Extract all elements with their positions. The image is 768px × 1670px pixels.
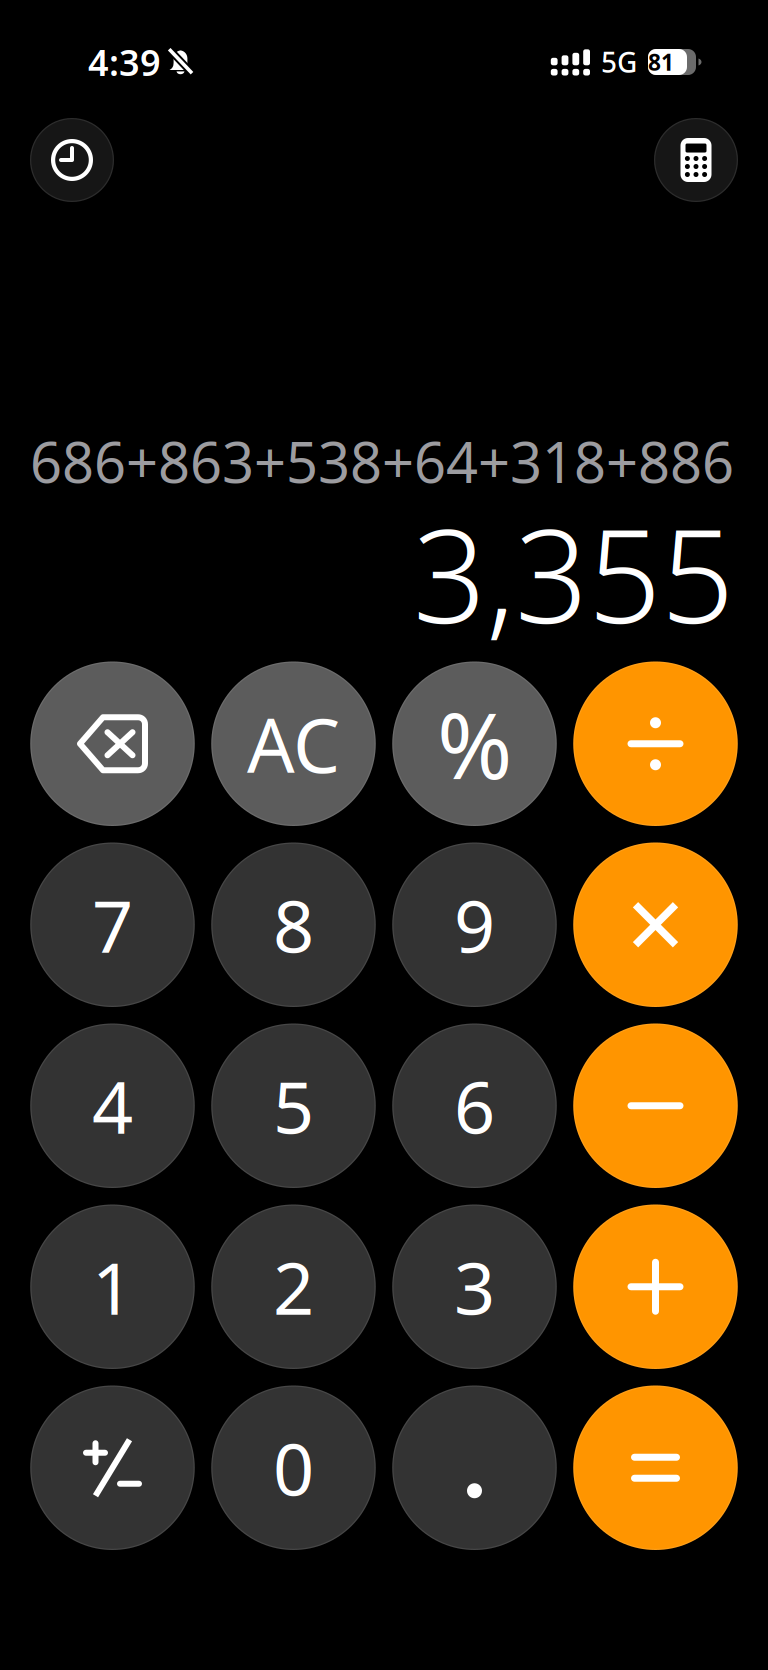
button[interactable]: 0 — [211, 1385, 376, 1550]
button[interactable]: 6 — [392, 1023, 557, 1188]
staticText: 3,355 — [413, 488, 734, 658]
button[interactable]: % — [392, 661, 557, 826]
button[interactable]: Calculator mode — [654, 118, 738, 202]
button[interactable]: Subtract — [573, 1023, 738, 1188]
button[interactable]: Plus minus — [30, 1385, 195, 1550]
staticText: 4 — [92, 1058, 133, 1153]
button[interactable]: 3 — [392, 1204, 557, 1369]
staticText: 81 — [648, 47, 674, 77]
staticText: 6 — [454, 1058, 495, 1153]
staticText: 2 — [273, 1239, 314, 1334]
staticText: 8 — [273, 877, 314, 972]
button[interactable]: 9 — [392, 842, 557, 1007]
button[interactable]: 4 — [30, 1023, 195, 1188]
staticText: 5 — [273, 1058, 314, 1153]
button[interactable]: Delete — [30, 661, 195, 826]
button[interactable]: Decimal point — [392, 1385, 557, 1550]
button[interactable]: 1 — [30, 1204, 195, 1369]
staticText: 9 — [454, 877, 495, 972]
button[interactable]: 8 — [211, 842, 376, 1007]
button[interactable]: 7 — [30, 842, 195, 1007]
button[interactable]: History — [30, 118, 114, 202]
staticText: % — [437, 683, 512, 804]
staticText: AC — [247, 694, 340, 793]
staticText: 7 — [92, 877, 133, 972]
staticText: 1 — [92, 1239, 133, 1334]
button[interactable]: Add — [573, 1204, 738, 1369]
button[interactable]: Divide — [573, 661, 738, 826]
staticText: 3 — [454, 1239, 495, 1334]
staticText: 686+863+538+64+318+886 — [30, 424, 734, 499]
staticText: 5G — [601, 43, 637, 81]
button[interactable]: Multiply — [573, 842, 738, 1007]
button[interactable]: 5 — [211, 1023, 376, 1188]
staticText: 0 — [273, 1420, 314, 1515]
button[interactable]: AC — [211, 661, 376, 826]
staticText: 4:39 — [88, 38, 161, 86]
button[interactable]: Equals — [573, 1385, 738, 1550]
button[interactable]: 2 — [211, 1204, 376, 1369]
